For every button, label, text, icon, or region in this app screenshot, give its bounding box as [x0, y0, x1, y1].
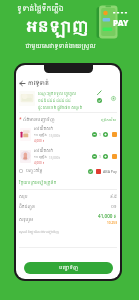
staticText: * [19, 116, 22, 123]
button[interactable]: Back [19, 80, 26, 87]
staticText: ជ្រើសរើស [101, 117, 117, 123]
staticText: សូមពិនិត្យមើលការបញ្ជាទិញ [19, 229, 59, 234]
staticText: ផ្ទះលេខ១២ ផ្លូវ២៧១ សង្កាត់ [38, 105, 83, 111]
button[interactable]: Decrease quantity [92, 132, 97, 137]
staticText: ជាមួយសេវាទូទាត់ងាយស្រួល [25, 42, 96, 51]
staticText: ×១ គ្រឿង [34, 133, 47, 138]
staticText: ព័ត៌មានបញ្ជាទិញ [23, 116, 55, 123]
button[interactable]: Delete item [112, 132, 117, 137]
staticText: បញ្ចុះតម្លៃ [26, 168, 43, 174]
button[interactable]: Selected address [97, 98, 102, 103]
staticText: 41,000 ៛ [98, 213, 117, 220]
staticText: 15,000៛ [49, 134, 61, 138]
button[interactable]: Edit [97, 90, 102, 95]
staticText: ការទូទាត់ [28, 79, 49, 88]
staticText: ×១ គ្រឿង [34, 155, 47, 160]
staticText: ០៨៥ ៨៨៨ ៨៨៨ ៨៨ [38, 98, 71, 104]
button[interactable]: Decrease quantity [92, 154, 97, 159]
button[interactable]: Delete item [112, 154, 117, 159]
staticText: ០១ [111, 204, 117, 210]
staticText: អាវយឺតសក់ [34, 148, 54, 154]
staticText: អាវយឺតសក់ [34, 126, 54, 132]
staticText: ដឹកជញ្ជូន [19, 204, 35, 210]
staticText: សរុបរួម [19, 216, 34, 223]
staticText: 1 [99, 154, 101, 159]
staticText: វិក្កយបត្រអេឡិចត្រូនិក [19, 180, 57, 186]
button[interactable]: បញ្ចុះតម្លៃ [19, 168, 117, 174]
button[interactable]: Location [111, 96, 116, 101]
staticText: 15,000៛ [49, 156, 61, 160]
button[interactable]: Increase quantity [103, 132, 108, 137]
staticText: 10.25$ [107, 221, 117, 225]
staticText: 4,000 ៛ [34, 139, 45, 143]
staticText: សរុប [19, 194, 28, 200]
staticText: 4,000 ៛ [34, 161, 45, 165]
staticText: ៩.៥ [110, 194, 117, 200]
button[interactable]: ឈ្មោះអ្នកទទួល ហ្គូហ្គល [19, 89, 119, 111]
staticText: បញ្ជាទិញ [59, 264, 79, 272]
staticText: 1 [99, 132, 101, 137]
staticText: PAY [113, 17, 129, 28]
button[interactable]: បញ្ជាទិញ [24, 262, 113, 274]
staticText: អនឡាញ [26, 15, 89, 41]
button[interactable]: Increase quantity [103, 154, 108, 159]
staticText: ABA Pay [103, 169, 117, 174]
staticText: ឈ្មោះអ្នកទទួល ហ្គូហ្គល [38, 91, 77, 97]
staticText: ទូទាត់ថ្លៃទឹកភ្លើង [17, 4, 64, 15]
